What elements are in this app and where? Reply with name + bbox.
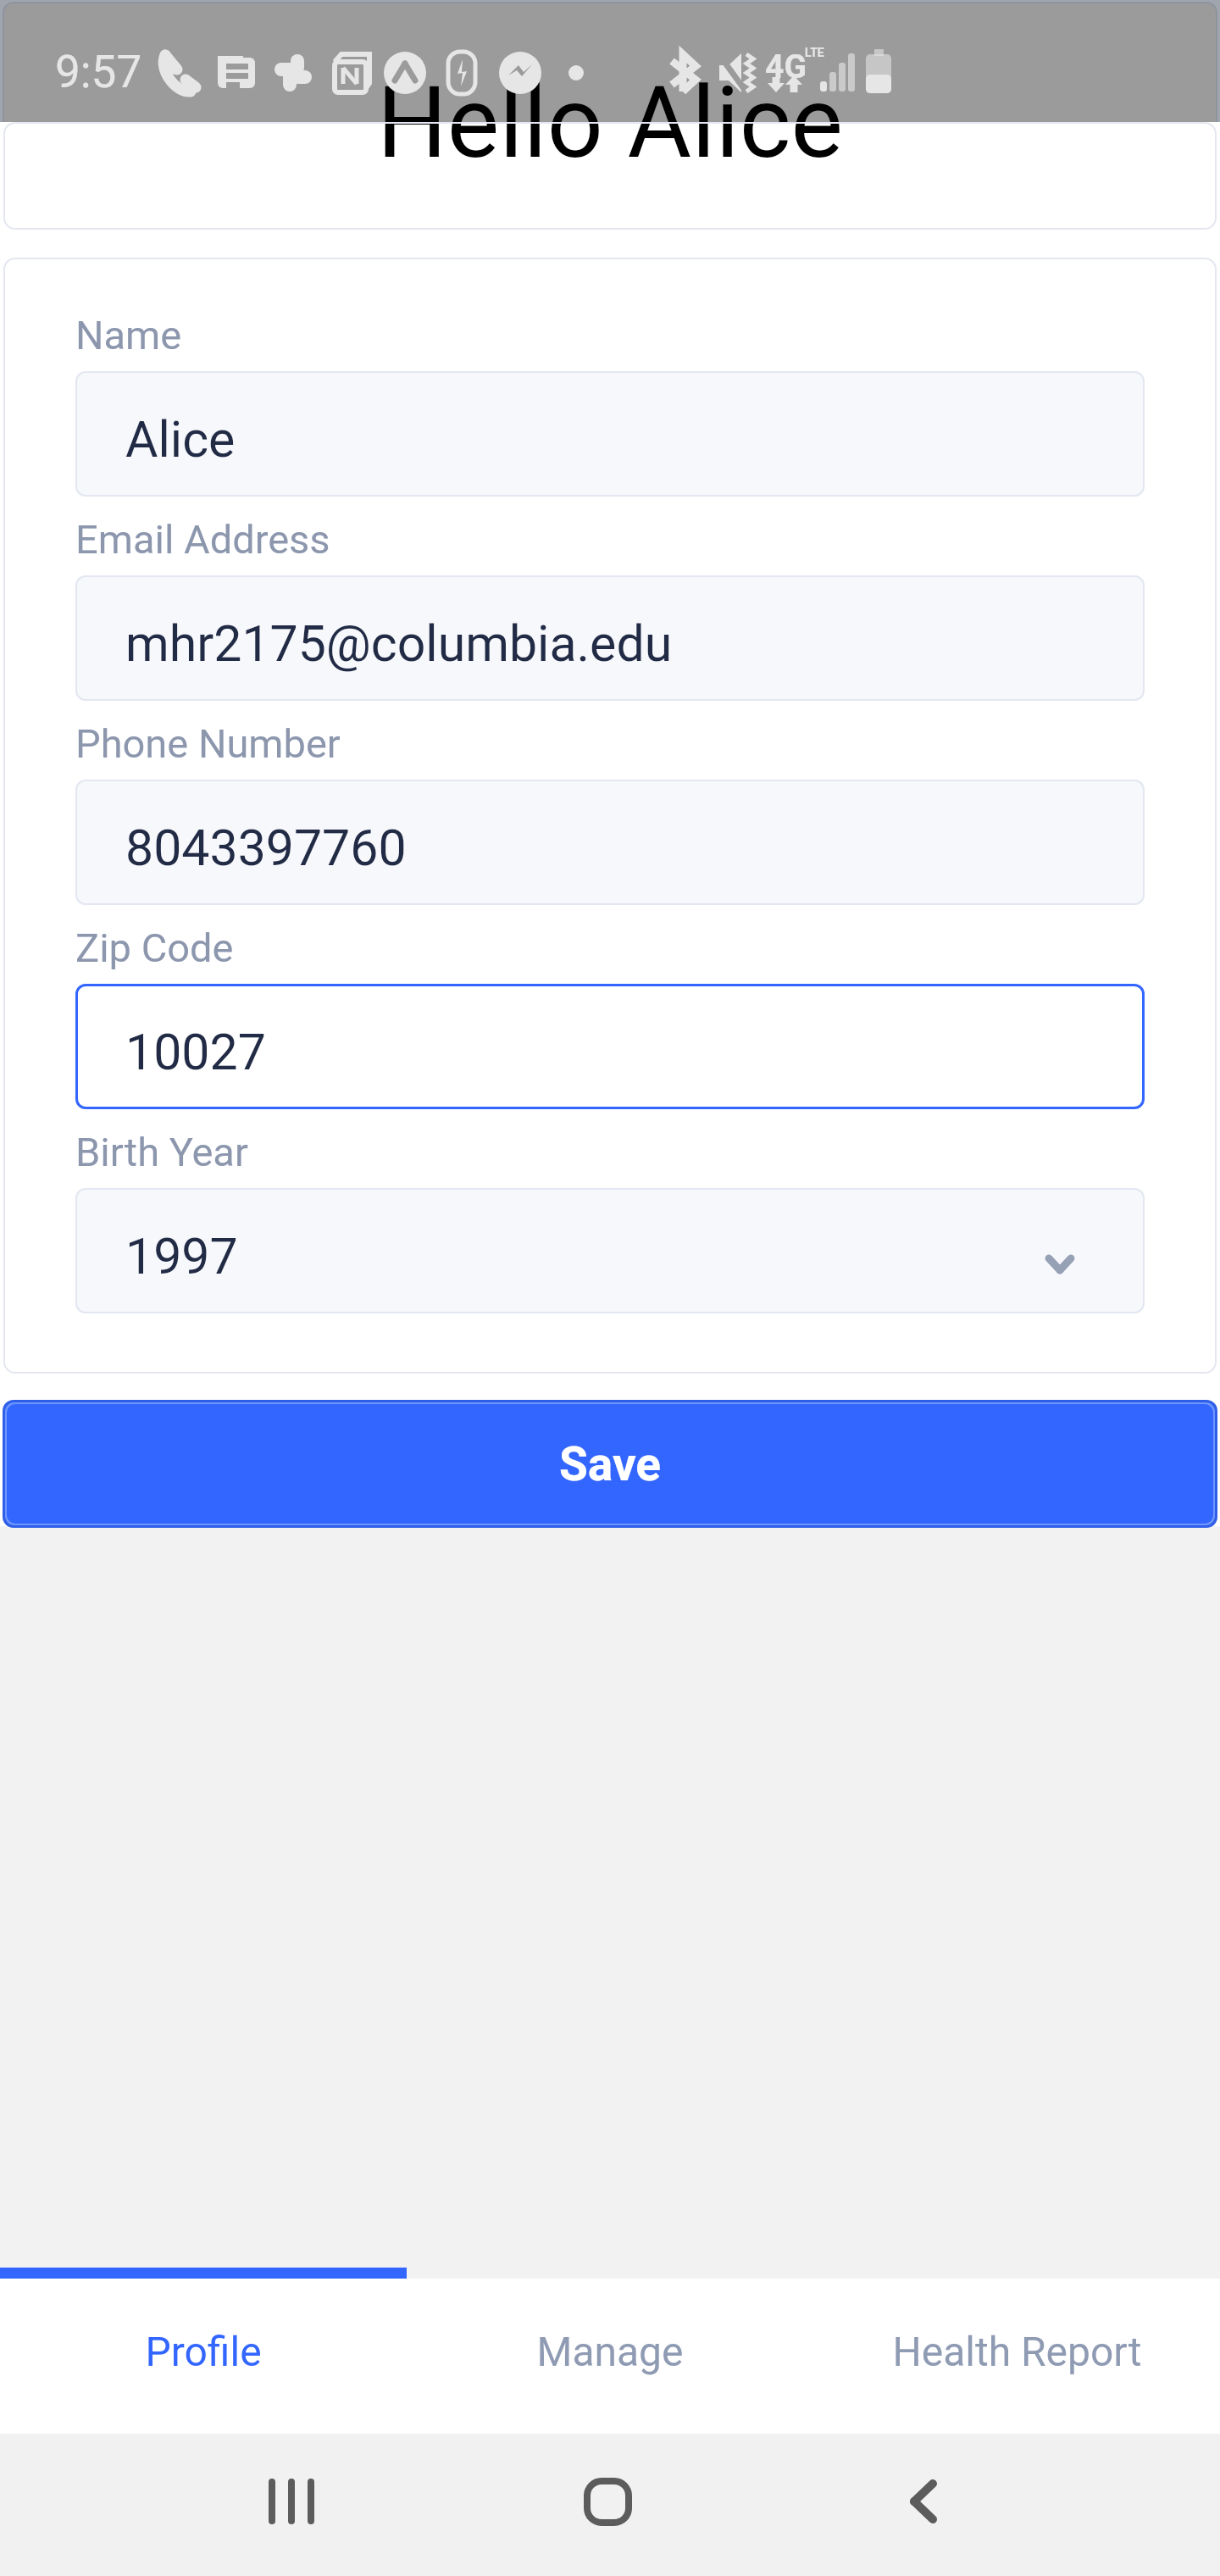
staticText: Health Report [892,2328,1142,2375]
button[interactable]: mhr2175@columbia.edu [75,575,1145,701]
button[interactable]: Recent apps [190,2430,393,2573]
staticText: 10027 [125,1023,266,1081]
staticText: Alice [125,410,236,469]
staticText: Zip Code [75,924,234,971]
staticText: Name [75,312,182,358]
button[interactable]: Manage [407,2279,813,2434]
button[interactable]: Save [7,1404,1213,1524]
button[interactable]: Home [506,2430,709,2573]
staticText: 1997 [125,1227,238,1285]
staticText: Profile [145,2328,262,2375]
button[interactable]: 1997 [75,1188,1145,1313]
staticText: LTE [805,46,824,59]
staticText: Manage [536,2328,684,2375]
staticText: Email Address [75,516,330,563]
staticText: mhr2175@columbia.edu [125,614,673,673]
button[interactable]: Health Report [813,2279,1220,2434]
staticText: Hello Alice [377,65,843,173]
staticText: 9:57 [55,46,142,98]
button[interactable]: Back [822,2430,1025,2573]
staticText: 4G [765,47,807,86]
staticText: Phone Number [75,720,341,767]
staticText: Birth Year [75,1129,248,1175]
button[interactable]: 10027 [75,984,1145,1109]
button[interactable]: Alice [75,371,1145,497]
staticText: Save [559,1437,662,1491]
button[interactable]: 8043397760 [75,780,1145,905]
button[interactable]: Profile [0,2279,407,2434]
staticText: 8043397760 [125,819,407,877]
